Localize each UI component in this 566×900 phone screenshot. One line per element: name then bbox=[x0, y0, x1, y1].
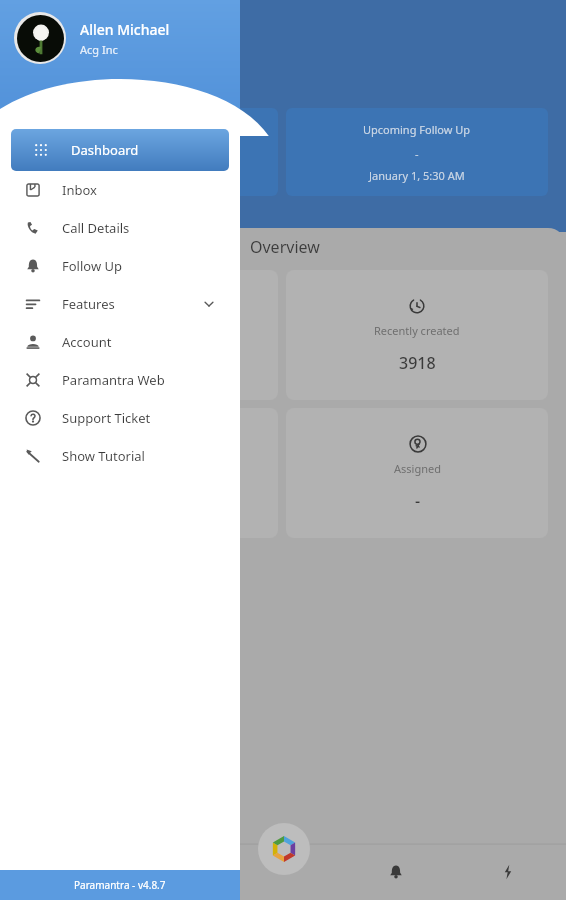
staticText: Show Tutorial bbox=[62, 447, 145, 465]
button[interactable]: Call Details bbox=[0, 209, 240, 247]
button[interactable]: Quick actions bbox=[484, 844, 532, 900]
staticText: Paramantra Web bbox=[62, 371, 165, 389]
button[interactable]: Follow Up bbox=[0, 247, 240, 285]
button[interactable]: Features bbox=[0, 285, 240, 323]
button[interactable]: Paramantra Web bbox=[0, 361, 240, 399]
button[interactable]: Account bbox=[0, 323, 240, 361]
staticText: Upcoming Follow Up bbox=[363, 122, 471, 137]
button[interactable]: Paramantra - v4.8.7 bbox=[0, 870, 240, 900]
staticText: Account bbox=[62, 333, 112, 351]
button[interactable]: Dashboard bbox=[11, 129, 229, 171]
staticText: Dashboard bbox=[71, 141, 139, 159]
button[interactable]: 0 bbox=[180, 108, 278, 196]
staticText: Allen Michael bbox=[80, 20, 170, 39]
staticText: Follow Up bbox=[62, 257, 123, 275]
staticText: Paramantra - v4.8.7 bbox=[74, 878, 166, 892]
staticText: - bbox=[415, 490, 421, 512]
staticText: Acg Inc bbox=[80, 42, 118, 57]
staticText: Features bbox=[62, 295, 115, 313]
staticText: Support Ticket bbox=[62, 409, 151, 427]
staticText: Overview bbox=[250, 236, 320, 258]
button[interactable] bbox=[180, 408, 278, 538]
button[interactable]: Show Tutorial bbox=[0, 437, 240, 475]
button[interactable]: Support Ticket bbox=[0, 399, 240, 437]
button[interactable] bbox=[180, 270, 278, 400]
button[interactable]: Upcoming Follow Up bbox=[286, 108, 548, 196]
button[interactable]: Assigned bbox=[286, 408, 548, 538]
staticText: Inbox bbox=[62, 181, 97, 199]
staticText: 0 bbox=[225, 142, 234, 162]
button[interactable]: Inbox bbox=[0, 171, 240, 209]
staticText: Recently created bbox=[374, 323, 460, 338]
staticText: January 1, 5:30 AM bbox=[369, 168, 465, 183]
staticText: Call Details bbox=[62, 219, 130, 237]
staticText: - bbox=[415, 146, 419, 161]
staticText: Assigned bbox=[394, 461, 441, 476]
staticText: 3918 bbox=[399, 352, 436, 374]
button[interactable]: Paramantra bbox=[258, 823, 310, 875]
button[interactable]: Notifications bbox=[372, 844, 420, 900]
button[interactable]: Recently created bbox=[286, 270, 548, 400]
